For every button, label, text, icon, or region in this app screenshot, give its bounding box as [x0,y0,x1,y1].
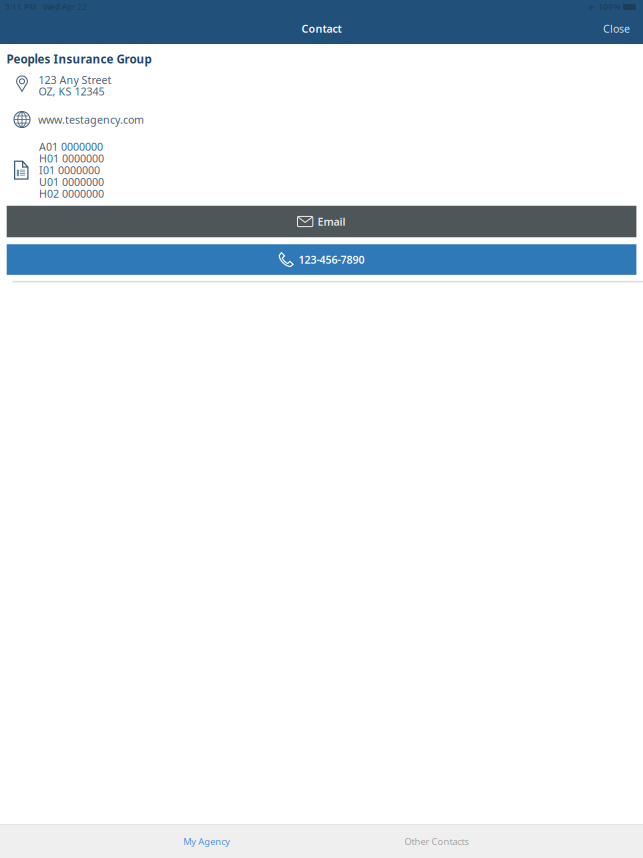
staticText: A01 0000000 [39,139,103,154]
button[interactable]: Close [589,14,643,43]
staticText: 123 Any Street [38,73,111,87]
staticText: Other Contacts [404,835,468,848]
button[interactable]: 123-456-7890 [7,244,636,275]
staticText: Peoples Insurance Group [7,51,152,67]
button[interactable]: My Agency [92,825,322,858]
staticText: Contact [301,21,341,36]
staticText: Email [318,214,346,229]
staticText: Close [603,21,630,36]
staticText: 3:11 PM [5,2,36,12]
staticText: 100% [598,2,620,12]
button[interactable]: www.testagency.com [30,112,144,127]
staticText: www.testagency.com [38,112,144,127]
staticText: H01 0000000 [39,151,104,165]
staticText: U01 0000000 [39,175,104,189]
staticText: 123-456-7890 [299,252,365,267]
button[interactable]: Email [7,206,636,237]
staticText: I01 0000000 [39,163,100,177]
staticText: H02 0000000 [39,187,104,201]
staticText: Wed Apr 22 [43,2,87,12]
button[interactable]: Other Contacts [321,825,551,858]
staticText: OZ, KS 12345 [38,84,104,99]
staticText: My Agency [183,835,230,848]
